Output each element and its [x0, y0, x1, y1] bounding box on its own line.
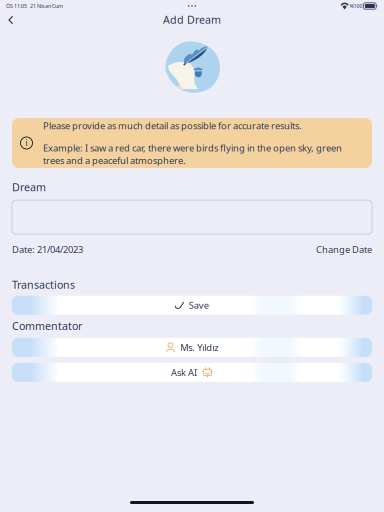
button[interactable]: Ms. Yıldız [12, 338, 372, 357]
staticText: Please provide as much detail as possibl… [43, 119, 302, 132]
staticText: Commentator [12, 319, 82, 333]
staticText: Ask AI [171, 366, 197, 379]
staticText: Ms. Yıldız [180, 341, 218, 354]
button[interactable]: Change Date [316, 243, 372, 256]
button[interactable]: Back [0, 13, 21, 33]
staticText: Change Date [316, 243, 372, 256]
staticText: %100 [349, 2, 364, 10]
staticText: Example: I saw a red car, there were bir… [43, 142, 342, 167]
staticText: ÖS 11:05 21 Nisan Cum [6, 2, 63, 10]
staticText: i [25, 137, 27, 148]
staticText: Save [189, 299, 209, 311]
staticText: Add Dream [163, 12, 221, 27]
staticText: Date: 21/04/2023 [12, 243, 83, 256]
staticText: Dream [12, 180, 46, 194]
button[interactable]: Ask AI [12, 363, 372, 382]
button[interactable]: Save [12, 296, 372, 315]
staticText: Transactions [12, 278, 75, 292]
